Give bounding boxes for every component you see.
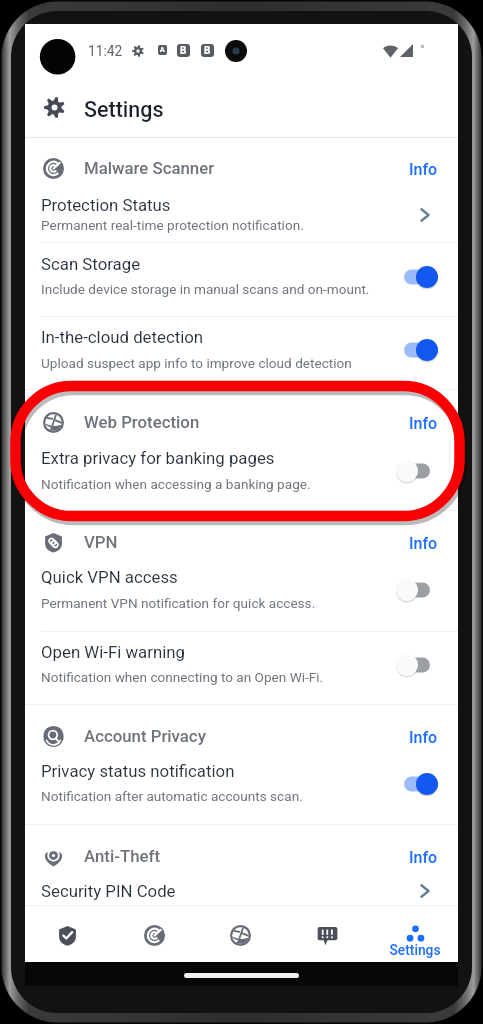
staticText: Privacy status notification <box>41 761 235 781</box>
staticText: Malware Scanner <box>84 158 215 178</box>
button[interactable]: Malware Scanner <box>25 144 458 192</box>
staticText: Web Protection <box>84 412 200 432</box>
staticText: Notification when connecting to an Open … <box>41 669 324 685</box>
staticText: In-the-cloud detection <box>41 327 204 347</box>
button[interactable]: Scan Storage <box>25 244 458 302</box>
button[interactable]: In-the-cloud detection <box>396 339 438 361</box>
button[interactable]: Security PIN Code <box>25 871 458 915</box>
staticText: Settings <box>372 942 458 958</box>
staticText: B <box>180 45 187 57</box>
button[interactable]: Info <box>405 405 442 440</box>
button[interactable]: Open Wi-Fi warning <box>25 632 458 690</box>
staticText: Settings <box>84 97 164 122</box>
staticText: Security PIN Code <box>41 881 176 901</box>
staticText: Info <box>409 848 438 867</box>
staticText: Scan Storage <box>41 254 141 274</box>
button[interactable]: Quick VPN access <box>396 579 438 601</box>
staticText: Extra privacy for banking pages <box>41 448 275 468</box>
staticText: Permanent real-time protection notificat… <box>41 217 304 233</box>
button[interactable]: Privacy status notification <box>396 773 438 795</box>
button[interactable]: In-the-cloud detection <box>25 317 458 376</box>
button[interactable]: Web Protection <box>197 906 283 962</box>
staticText: Info <box>409 414 438 433</box>
button[interactable]: Scan <box>111 906 197 962</box>
button[interactable]: Info <box>405 839 442 874</box>
staticText: Protection Status <box>41 195 171 215</box>
button[interactable]: Privacy status notification <box>25 751 458 809</box>
button[interactable]: Open Wi-Fi warning <box>396 654 438 676</box>
staticText: Permanent VPN notification for quick acc… <box>41 595 316 611</box>
staticText: Include device storage in manual scans a… <box>41 281 370 297</box>
button[interactable]: Anti-Theft <box>25 832 458 880</box>
staticText: Quick VPN access <box>41 567 178 587</box>
button[interactable]: Quick VPN access <box>25 557 458 617</box>
staticText: A <box>160 46 165 54</box>
button[interactable]: Notifications <box>284 906 370 962</box>
button[interactable]: Account Privacy <box>25 712 458 760</box>
staticText: Anti-Theft <box>84 846 161 866</box>
button[interactable]: Info <box>405 151 442 186</box>
button[interactable]: Info <box>405 525 442 560</box>
button[interactable]: Web Protection <box>25 398 458 446</box>
staticText: Notification when accessing a banking pa… <box>41 476 311 492</box>
button[interactable]: Info <box>405 719 442 754</box>
staticText: Notification after automatic accounts sc… <box>41 788 303 804</box>
staticText: VPN <box>84 532 118 552</box>
staticText: B <box>204 45 211 57</box>
staticText: Info <box>409 534 438 553</box>
staticText: Account Privacy <box>84 726 206 746</box>
staticText: 11:42 <box>88 43 123 59</box>
button[interactable]: Scan Storage <box>396 266 438 288</box>
staticText: Upload suspect app info to improve cloud… <box>41 355 352 371</box>
staticText: Info <box>409 160 438 179</box>
staticText: Info <box>409 728 438 747</box>
button[interactable]: Protection Status <box>25 185 458 238</box>
button[interactable]: Extra privacy for banking pages <box>396 460 438 482</box>
button[interactable]: VPN <box>25 518 458 566</box>
button[interactable]: Extra privacy for banking pages <box>25 438 458 497</box>
staticText: Open Wi-Fi warning <box>41 642 186 662</box>
button[interactable]: Settings <box>372 906 458 962</box>
button[interactable]: Protection <box>24 906 110 962</box>
